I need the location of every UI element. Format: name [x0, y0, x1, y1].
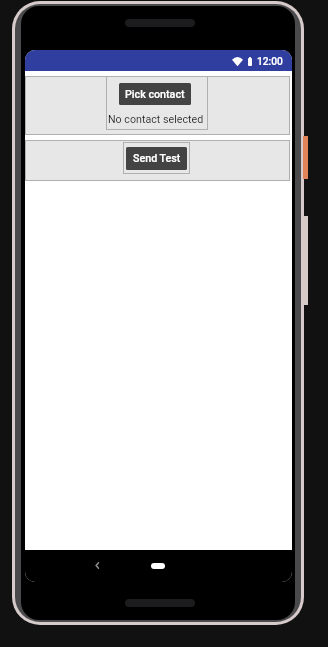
staticText: 12:00 — [257, 56, 283, 68]
staticText: Send Test — [133, 152, 181, 165]
button[interactable]: Pick contact — [119, 83, 191, 105]
button[interactable]: Home — [138, 556, 177, 576]
staticText: Pick contact — [125, 88, 185, 101]
button[interactable]: Send Test — [126, 147, 187, 170]
staticText: No contact selected — [108, 113, 204, 126]
button[interactable]: Back — [85, 555, 109, 575]
